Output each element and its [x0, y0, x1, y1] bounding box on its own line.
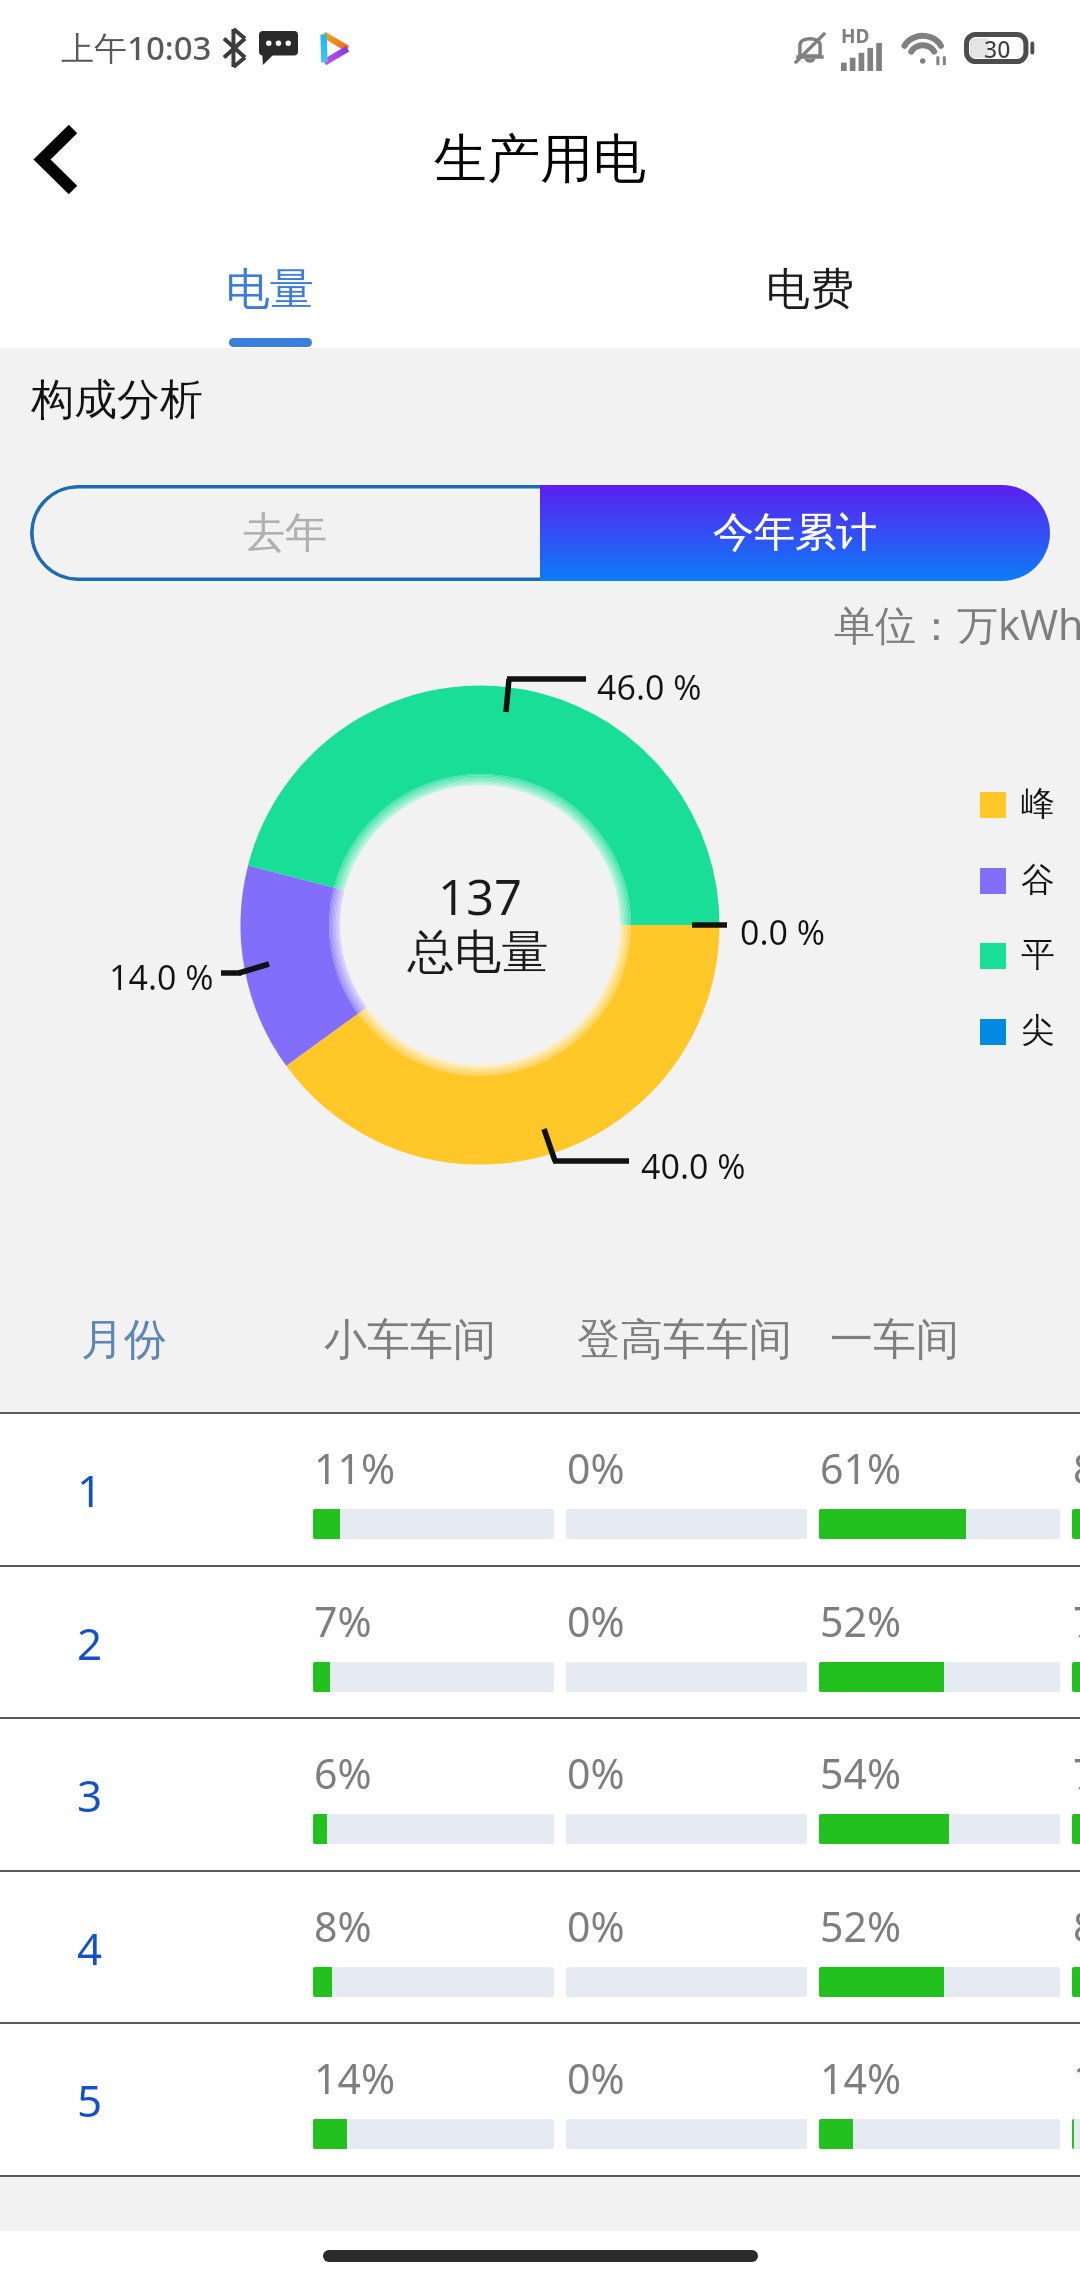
staticText: 电量 [226, 262, 314, 317]
staticText: 14% [820, 2050, 901, 2106]
button[interactable]: 4 [0, 1872, 1080, 2025]
staticText: 7% [1073, 1593, 1080, 1649]
staticText: 4 [77, 1918, 103, 1978]
staticText: 54% [820, 1745, 901, 1801]
staticText: 7% [314, 1593, 372, 1649]
button[interactable]: 1 [0, 1414, 1080, 1567]
button[interactable]: 2 [0, 1567, 1080, 1720]
staticText: 0% [567, 1898, 625, 1954]
staticText: 平 [1021, 933, 1055, 976]
button[interactable]: 电量 [0, 240, 540, 348]
staticText: 8% [1073, 1898, 1080, 1954]
staticText: 8% [314, 1898, 372, 1954]
staticText: 月份 [81, 1313, 167, 1367]
staticText: 7% [1073, 1745, 1080, 1801]
button[interactable]: 5 [0, 2024, 1080, 2177]
button[interactable]: 3 [0, 1719, 1080, 1872]
staticText: 0% [567, 1745, 625, 1801]
button[interactable]: Back [3, 105, 111, 213]
staticText: 生产用电 [434, 126, 646, 193]
button[interactable]: 电费 [540, 240, 1080, 348]
staticText: 0% [567, 1593, 625, 1649]
staticText: 1% [1073, 2050, 1080, 2106]
staticText: 0% [567, 1440, 625, 1496]
staticText: 0.0 % [740, 909, 826, 955]
button[interactable]: 去年 [30, 485, 540, 581]
staticText: 1 [77, 1460, 103, 1520]
staticText: 14% [314, 2050, 395, 2106]
staticText: 登高车车间 [577, 1313, 792, 1367]
staticText: 61% [820, 1440, 901, 1496]
staticText: 上午10:03 [61, 25, 212, 70]
staticText: 52% [820, 1898, 901, 1954]
staticText: 峰 [1021, 782, 1055, 825]
staticText: 11% [314, 1440, 395, 1496]
staticText: 今年累计 [713, 507, 877, 559]
staticText: 52% [820, 1593, 901, 1649]
staticText: 电费 [766, 262, 854, 317]
staticText: 137 [370, 863, 590, 930]
button[interactable]: 今年累计 [540, 485, 1050, 581]
staticText: 5 [77, 2070, 103, 2130]
staticText: 总电量 [368, 923, 588, 982]
staticText: 尖 [1021, 1009, 1055, 1052]
staticText: 40.0 % [641, 1143, 746, 1189]
staticText: 一车间 [830, 1313, 959, 1367]
staticText: 去年 [243, 507, 327, 560]
staticText: 8% [1073, 1440, 1080, 1496]
staticText: 单位：万kWh [834, 596, 1080, 652]
staticText: 30 [984, 33, 1011, 64]
staticText: 14.0 % [109, 954, 214, 1000]
staticText: 2 [77, 1613, 103, 1673]
staticText: 小车车间 [324, 1313, 496, 1367]
staticText: 46.0 % [597, 664, 702, 710]
staticText: 3 [77, 1765, 103, 1825]
staticText: 6% [314, 1745, 372, 1801]
staticText: 构成分析 [31, 373, 203, 427]
staticText: 谷 [1021, 858, 1055, 901]
staticText: HD [841, 23, 870, 49]
staticText: 0% [567, 2050, 625, 2106]
